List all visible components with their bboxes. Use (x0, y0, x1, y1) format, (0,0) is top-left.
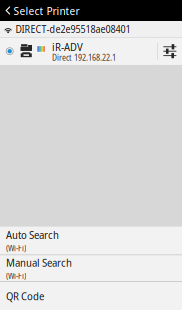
staticText: Auto Search (6, 228, 59, 242)
staticText: DIRECT-de2e95518ae08401 (16, 22, 131, 36)
button[interactable]: Auto Search (0, 227, 182, 255)
button[interactable]: Select Printer (0, 0, 182, 21)
button[interactable]: iR-ADV (0, 38, 157, 65)
staticText: (Wi-Fi) (6, 243, 26, 254)
staticText: Select Printer (13, 3, 79, 18)
staticText: QR Code (6, 289, 44, 303)
staticText: iR-ADV (52, 40, 83, 54)
staticText: Manual Search (6, 255, 72, 270)
button[interactable]: Manual Search (0, 255, 182, 281)
staticText: (Wi-Fi) (6, 270, 26, 281)
button[interactable]: QR Code (0, 282, 182, 310)
button[interactable]: Printer settings (158, 38, 182, 65)
staticText: Direct 192.168.22.1 (52, 51, 116, 63)
